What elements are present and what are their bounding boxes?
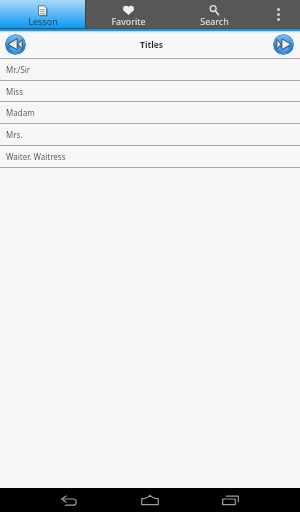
button[interactable]: Favorite — [85, 0, 171, 29]
button[interactable]: Lesson — [0, 0, 85, 29]
button[interactable]: More options — [257, 0, 300, 29]
button[interactable]: Previous — [5, 34, 26, 55]
staticText: Madam — [6, 107, 35, 118]
button[interactable]: Mr./Sir — [0, 59, 300, 81]
staticText: Miss — [6, 86, 23, 97]
button[interactable]: Miss — [0, 81, 300, 102]
staticText: Search — [200, 15, 229, 27]
button[interactable]: Madam — [0, 102, 300, 124]
staticText: Favorite — [111, 15, 146, 27]
button[interactable]: Waiter. Waitress — [0, 146, 300, 168]
staticText: Titles — [140, 39, 164, 51]
button[interactable]: Mrs. — [0, 124, 300, 146]
button[interactable]: Search — [171, 0, 257, 29]
button[interactable]: Recents — [202, 488, 258, 512]
button[interactable]: Next — [273, 34, 294, 55]
staticText: Mrs. — [6, 129, 23, 140]
staticText: Lesson — [28, 15, 58, 27]
button[interactable]: Back — [41, 488, 97, 512]
staticText: Waiter. Waitress — [6, 151, 66, 162]
button[interactable]: Home — [122, 488, 178, 512]
staticText: Mr./Sir — [6, 64, 31, 75]
